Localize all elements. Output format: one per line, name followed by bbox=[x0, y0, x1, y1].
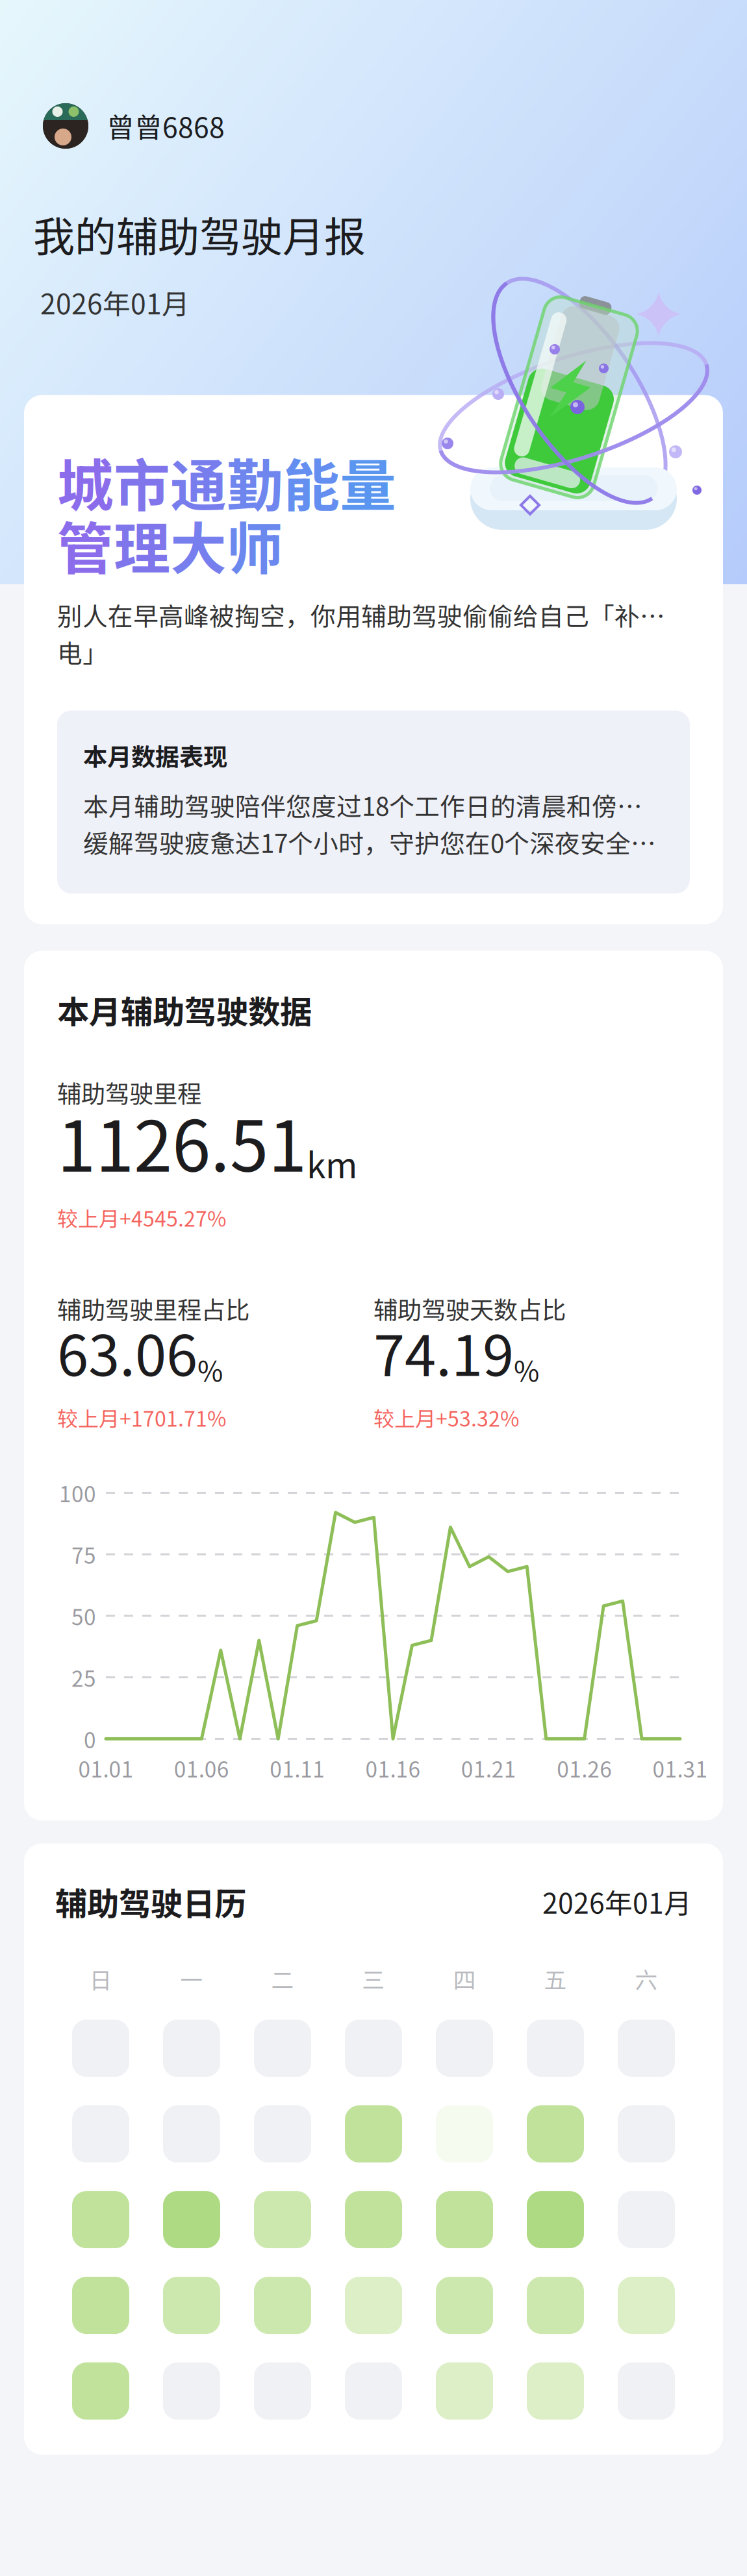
staticText: 管 bbox=[57, 504, 114, 585]
staticText: 大 bbox=[170, 504, 227, 585]
staticText: 1126.51 bbox=[57, 1091, 307, 1192]
staticText: 城 bbox=[57, 441, 114, 522]
staticText: % bbox=[197, 1349, 223, 1390]
staticText: 勤 bbox=[227, 441, 283, 522]
staticText: km bbox=[307, 1138, 357, 1188]
staticText: 较上月+53.32% bbox=[373, 1402, 519, 1433]
staticText: 三 bbox=[362, 1962, 385, 1995]
staticText: 63.06 bbox=[57, 1311, 197, 1392]
staticText: 较上月+4545.27% bbox=[57, 1203, 226, 1233]
staticText: 50 bbox=[71, 1600, 96, 1631]
staticText: 辅助驾驶日历 bbox=[55, 1878, 246, 1925]
staticText: 我的辅助驾驶月报 bbox=[33, 204, 366, 264]
staticText: 100 bbox=[59, 1477, 96, 1508]
staticText: 电」 bbox=[57, 634, 108, 670]
staticText: 市 bbox=[114, 441, 170, 522]
staticText: 一 bbox=[180, 1962, 203, 1995]
staticText: 01.26 bbox=[557, 1752, 612, 1784]
staticText: 辅助驾驶里程占比 bbox=[57, 1291, 249, 1326]
staticText: 74.19 bbox=[373, 1311, 514, 1392]
staticText: 本月辅助驾驶数据 bbox=[57, 987, 312, 1033]
staticText: 四 bbox=[453, 1962, 476, 1995]
staticText: 75 bbox=[71, 1539, 96, 1570]
staticText: 通 bbox=[170, 441, 227, 522]
staticText: 2026年01月 bbox=[40, 282, 190, 322]
staticText: 师 bbox=[227, 504, 283, 585]
staticText: 01.01 bbox=[78, 1752, 133, 1784]
staticText: 01.31 bbox=[652, 1752, 708, 1784]
staticText: 缓解驾驶疲惫达17个小时，守护您在0个深夜安全出行 bbox=[83, 824, 664, 860]
staticText: 二 bbox=[271, 1962, 294, 1995]
staticText: 辅助驾驶里程 bbox=[57, 1075, 201, 1110]
staticText: 01.11 bbox=[270, 1752, 325, 1784]
staticText: 2026年01月 bbox=[542, 1882, 692, 1922]
staticText: % bbox=[514, 1349, 539, 1390]
staticText: 01.16 bbox=[365, 1752, 421, 1784]
staticText: 别人在早高峰被掏空，你用辅助驾驶偷偷给自己「补能充 bbox=[57, 597, 690, 633]
staticText: 01.21 bbox=[461, 1752, 516, 1784]
staticText: 曾曾6868 bbox=[107, 106, 225, 146]
staticText: 六 bbox=[635, 1962, 658, 1995]
staticText: 日 bbox=[89, 1962, 112, 1995]
staticText: 25 bbox=[71, 1662, 96, 1693]
staticText: 理 bbox=[114, 504, 170, 585]
staticText: 本月辅助驾驶陪伴您度过18个工作日的清晨和傍晚， bbox=[83, 787, 664, 823]
staticText: 01.06 bbox=[174, 1752, 229, 1784]
staticText: 较上月+1701.71% bbox=[57, 1402, 226, 1433]
staticText: 0 bbox=[84, 1723, 96, 1755]
staticText: 五 bbox=[544, 1962, 567, 1995]
staticText: 能 bbox=[283, 441, 340, 522]
staticText: 量 bbox=[340, 441, 396, 522]
staticText: 本月数据表现 bbox=[83, 738, 227, 773]
staticText: 辅助驾驶天数占比 bbox=[373, 1291, 566, 1326]
